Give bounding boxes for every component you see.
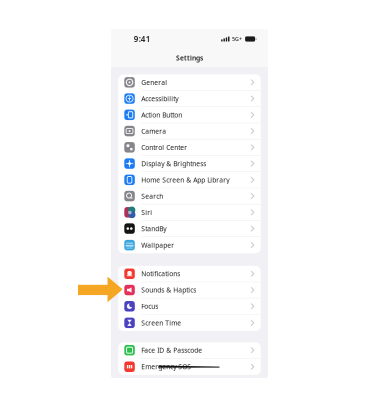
staticText: Display & Brightness	[141, 159, 206, 168]
button[interactable]: Display & Brightness	[118, 156, 261, 172]
button[interactable]: Sounds & Haptics	[118, 282, 261, 298]
staticText: Screen Time	[141, 318, 181, 327]
staticText: 5G+	[232, 35, 242, 43]
staticText: Notifications	[141, 269, 180, 278]
button[interactable]: Wallpaper	[118, 237, 261, 253]
staticText: Siri	[141, 208, 152, 217]
button[interactable]: Camera	[118, 123, 261, 139]
button[interactable]: Focus	[118, 298, 261, 315]
button[interactable]: Notifications	[118, 266, 261, 282]
button[interactable]: Face ID & Passcode	[118, 342, 261, 358]
staticText: Action Button	[141, 110, 182, 119]
button[interactable]: Action Button	[118, 107, 261, 123]
button[interactable]: StandBy	[118, 221, 261, 237]
staticText: Sounds & Haptics	[141, 286, 196, 294]
staticText: General	[141, 78, 167, 87]
button[interactable]: Home Screen & App Library	[118, 172, 261, 188]
button[interactable]: Emergency SOS	[118, 359, 261, 375]
staticText: Focus	[141, 302, 158, 311]
staticText: Control Center	[141, 143, 187, 152]
button[interactable]: General	[118, 74, 261, 91]
button[interactable]: Accessibility	[118, 91, 261, 107]
staticText: Accessibility	[141, 94, 178, 103]
staticText: Emergency SOS	[141, 362, 191, 371]
staticText: Home Screen & App Library	[141, 175, 229, 184]
staticText: Settings	[176, 54, 203, 62]
staticText: Search	[141, 192, 163, 200]
button[interactable]: Control Center	[118, 139, 261, 156]
button[interactable]: Screen Time	[118, 315, 261, 331]
staticText: Wallpaper	[141, 241, 174, 250]
button[interactable]: Siri	[118, 204, 261, 221]
staticText: Camera	[141, 127, 166, 135]
staticText: 9:41	[134, 34, 151, 44]
staticText: Face ID & Passcode	[141, 346, 202, 355]
staticText: StandBy	[141, 224, 166, 233]
button[interactable]: Search	[118, 188, 261, 204]
